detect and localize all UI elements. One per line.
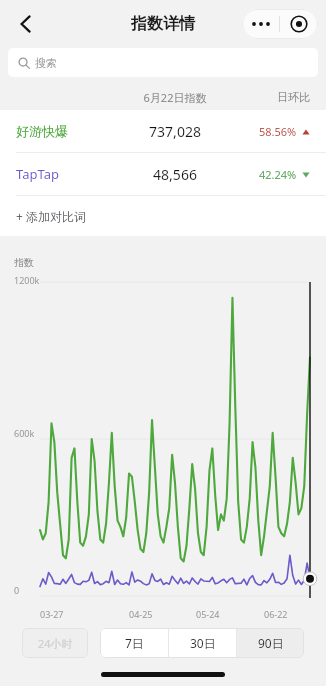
staticText: 737,028 xyxy=(120,122,230,141)
staticText: 90日 xyxy=(258,635,284,651)
button[interactable]: Back xyxy=(6,4,46,44)
button[interactable]: More xyxy=(242,9,279,39)
staticText: 0 xyxy=(14,584,20,596)
button[interactable]: 30日 xyxy=(169,628,236,658)
staticText: 6月22日指数 xyxy=(120,90,230,105)
staticText: 58.56% xyxy=(259,124,297,139)
staticText: 7日 xyxy=(125,635,144,651)
staticText: 好游快爆 xyxy=(16,123,120,139)
staticText: 日环比 xyxy=(230,90,310,104)
staticText: 42.24% xyxy=(259,167,297,182)
staticText: 04-25 xyxy=(129,608,153,620)
button[interactable]: 90日 xyxy=(237,628,304,658)
button[interactable]: 7日 xyxy=(100,628,168,658)
staticText: 05-24 xyxy=(196,608,220,620)
button[interactable]: Close xyxy=(280,9,318,39)
staticText: TapTap xyxy=(16,165,120,183)
staticText: 24小时 xyxy=(38,636,73,651)
button[interactable]: 搜索 xyxy=(8,48,318,77)
staticText: + 添加对比词 xyxy=(16,208,86,224)
button[interactable]: 好游快爆 xyxy=(0,110,326,152)
staticText: 指数详情 xyxy=(131,14,195,34)
staticText: 30日 xyxy=(190,635,216,651)
staticText: 600k xyxy=(14,427,35,439)
staticText: 48,566 xyxy=(120,165,230,184)
staticText: 06-22 xyxy=(264,608,288,620)
staticText: 搜索 xyxy=(35,56,57,70)
button[interactable]: 24小时 xyxy=(22,628,88,658)
button[interactable]: TapTap xyxy=(0,153,326,195)
staticText: 指数 xyxy=(14,256,34,269)
staticText: 1200k xyxy=(14,274,40,286)
button[interactable]: + 添加对比词 xyxy=(0,196,326,236)
staticText: 03-27 xyxy=(40,608,64,620)
